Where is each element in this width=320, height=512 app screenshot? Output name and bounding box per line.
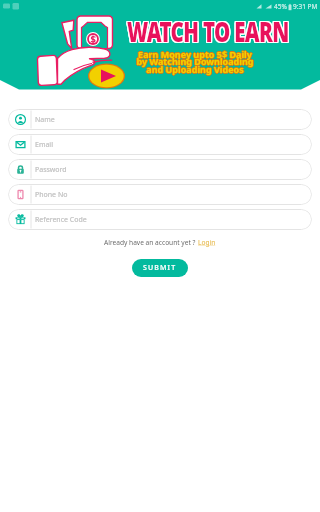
button[interactable]: Password <box>8 159 312 180</box>
staticText: Phone No <box>35 190 68 200</box>
button[interactable]: SUBMIT <box>132 259 188 277</box>
staticText: WATCH TO EARN <box>127 12 289 50</box>
staticText: WATCH TO EARN <box>126 11 288 49</box>
staticText: WATCH TO EARN <box>126 12 288 50</box>
button[interactable]: Phone No <box>8 184 312 205</box>
staticText: 45% <box>274 2 287 11</box>
staticText: Earn Money upto 5$ Daily by Watching Dow… <box>136 48 254 76</box>
staticText: Earn Money upto 5$ Daily by Watching Dow… <box>135 48 253 76</box>
staticText: Password <box>35 165 67 175</box>
staticText: WATCH TO EARN <box>128 12 290 50</box>
staticText: Earn Money upto 5$ Daily by Watching Dow… <box>136 47 254 75</box>
staticText: WATCH TO EARN <box>128 11 290 49</box>
staticText: Login <box>198 238 216 247</box>
staticText: SUBMIT <box>143 263 177 273</box>
staticText: Reference Code <box>35 215 87 225</box>
staticText: Already have an account yet ? <box>104 238 198 247</box>
staticText: Earn Money upto 5$ Daily by Watching Dow… <box>136 49 254 77</box>
button[interactable]: Name <box>8 109 312 130</box>
staticText: WATCH TO EARN <box>127 11 289 49</box>
staticText: 9:31 PM <box>293 2 318 11</box>
button[interactable]: Email <box>8 134 312 155</box>
button[interactable]: Reference Code <box>8 209 312 230</box>
staticText: Name <box>35 115 55 125</box>
staticText: WATCH TO EARN <box>128 13 290 51</box>
button[interactable]: Login <box>198 238 216 247</box>
staticText: Earn Money upto 5$ Daily by Watching Dow… <box>137 48 255 76</box>
staticText: WATCH TO EARN <box>126 13 288 51</box>
staticText: WATCH TO EARN <box>127 13 289 51</box>
staticText: Email <box>35 140 53 150</box>
